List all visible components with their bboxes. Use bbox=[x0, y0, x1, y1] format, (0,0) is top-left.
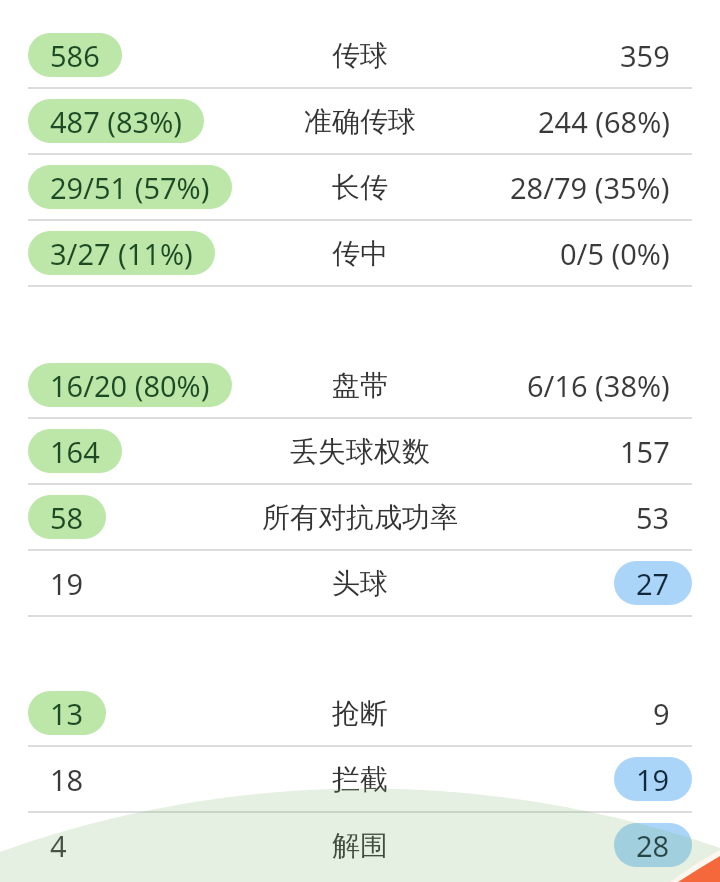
button[interactable]: 丢失球权数 bbox=[0, 418, 720, 484]
staticText: 传中 bbox=[332, 236, 388, 271]
button[interactable]: 所有对抗成功率 bbox=[0, 484, 720, 550]
staticText: 丢失球权数 bbox=[290, 434, 430, 469]
staticText: 3/27 (11%) bbox=[50, 234, 193, 273]
staticText: 28/79 (35%) bbox=[510, 168, 670, 207]
staticText: 所有对抗成功率 bbox=[262, 500, 458, 535]
staticText: 准确传球 bbox=[304, 104, 416, 139]
staticText: 16/20 (80%) bbox=[50, 366, 210, 405]
staticText: 头球 bbox=[332, 566, 388, 601]
button[interactable]: 拦截 bbox=[0, 746, 720, 812]
staticText: 586 bbox=[50, 36, 100, 75]
staticText: 27 bbox=[636, 564, 670, 603]
staticText: 19 bbox=[50, 564, 84, 603]
staticText: 长传 bbox=[332, 170, 388, 205]
staticText: 抢断 bbox=[332, 696, 388, 731]
staticText: 359 bbox=[620, 36, 670, 75]
staticText: 4 bbox=[50, 826, 67, 865]
staticText: 53 bbox=[636, 498, 670, 537]
staticText: 28 bbox=[636, 826, 670, 865]
staticText: 盘带 bbox=[332, 368, 388, 403]
button[interactable]: 传球 bbox=[0, 22, 720, 88]
staticText: 0/5 (0%) bbox=[560, 234, 670, 273]
staticText: 9 bbox=[653, 694, 670, 733]
button[interactable]: 抢断 bbox=[0, 680, 720, 746]
staticText: 解围 bbox=[332, 828, 388, 863]
staticText: 487 (83%) bbox=[50, 102, 182, 141]
button[interactable]: 传中 bbox=[0, 220, 720, 286]
staticText: 157 bbox=[620, 432, 670, 471]
button[interactable]: 长传 bbox=[0, 154, 720, 220]
staticText: 18 bbox=[50, 760, 84, 799]
staticText: 传球 bbox=[332, 38, 388, 73]
button[interactable]: 准确传球 bbox=[0, 88, 720, 154]
button[interactable]: 解围 bbox=[0, 812, 720, 878]
staticText: 19 bbox=[636, 760, 670, 799]
staticText: 29/51 (57%) bbox=[50, 168, 210, 207]
button[interactable]: 盘带 bbox=[0, 352, 720, 418]
staticText: 拦截 bbox=[332, 762, 388, 797]
staticText: 13 bbox=[50, 694, 84, 733]
staticText: 58 bbox=[50, 498, 84, 537]
staticText: 244 (68%) bbox=[538, 102, 670, 141]
staticText: 164 bbox=[50, 432, 100, 471]
staticText: 6/16 (38%) bbox=[527, 366, 670, 405]
button[interactable]: 头球 bbox=[0, 550, 720, 616]
